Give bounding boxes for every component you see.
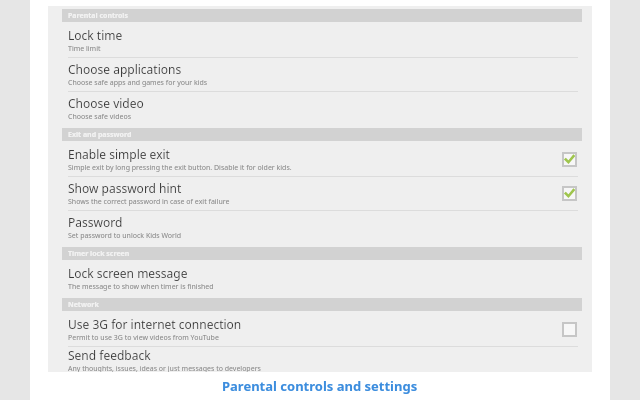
button[interactable]: Checked [561,151,578,168]
staticText: Parental controls and settings [222,377,418,395]
staticText: Lock screen message [68,265,188,281]
button[interactable]: Lock screen message [48,262,592,295]
staticText: Permit to use 3G to view videos from You… [68,333,219,343]
button[interactable]: Use 3G for internet connection [48,313,592,346]
staticText: Timer lock screen [68,249,130,259]
staticText: Exit and password [68,130,132,140]
button[interactable]: Unchecked [561,321,578,338]
button[interactable]: Choose applications [48,58,592,91]
button[interactable]: Checked [561,185,578,202]
button[interactable]: Choose video [48,92,592,125]
staticText: Choose applications [68,61,182,77]
button[interactable]: Enable simple exit [48,143,592,176]
staticText: Any thoughts, issues, ideas or just mess… [68,364,261,372]
staticText: Choose video [68,95,144,111]
staticText: Use 3G for internet connection [68,316,242,332]
staticText: Network [68,300,99,310]
staticText: Send feedback [68,347,151,363]
staticText: The message to show when timer is finish… [68,282,214,292]
staticText: Set password to unlock Kids World [68,231,182,241]
staticText: Parental controls [68,11,128,21]
staticText: Choose safe videos [68,112,131,122]
staticText: Lock time [68,27,123,43]
staticText: Time limit [68,44,101,54]
staticText: Shows the correct password in case of ex… [68,197,230,207]
button[interactable]: Show password hint [48,177,592,210]
staticText: Choose safe apps and games for your kids [68,78,208,88]
button[interactable]: Lock time [48,24,592,57]
button[interactable]: Password [48,211,592,244]
button[interactable]: Send feedback [48,347,592,372]
staticText: Password [68,214,123,230]
staticText: Simple exit by long pressing the exit bu… [68,163,292,173]
staticText: Enable simple exit [68,146,170,162]
staticText: Show password hint [68,180,182,196]
